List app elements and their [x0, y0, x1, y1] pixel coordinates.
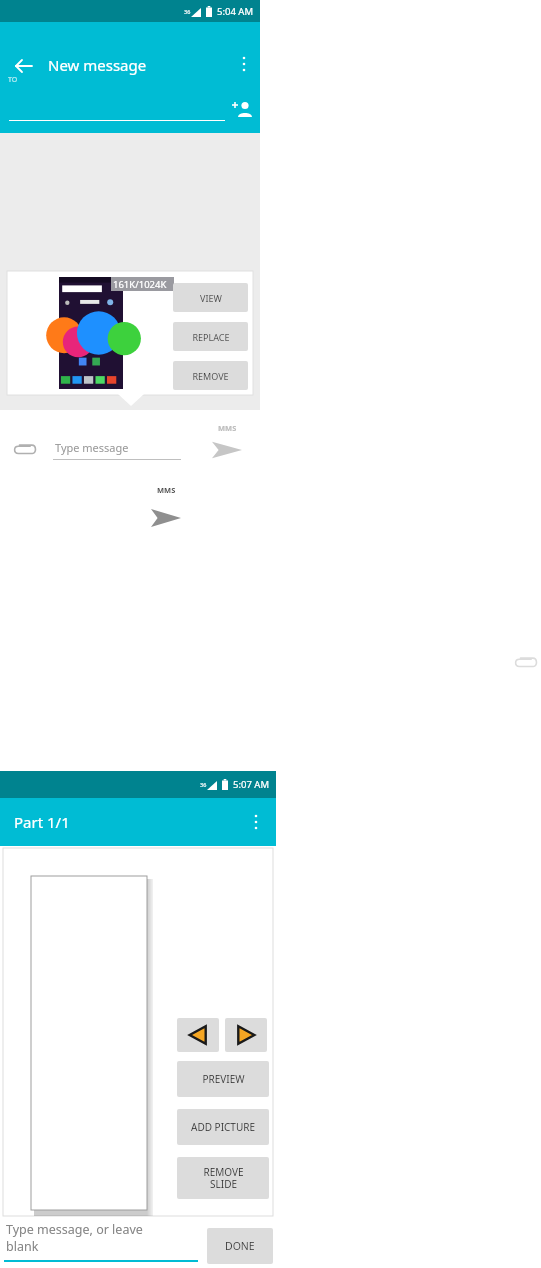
button[interactable]: REPLACE: [173, 322, 248, 351]
staticText: MMS: [218, 423, 237, 433]
staticText: Type message, or leave blank: [6, 1221, 143, 1255]
staticText: REMOVE SLIDE: [203, 1165, 244, 1191]
button[interactable]: Attach: [511, 648, 539, 676]
staticText: New message: [48, 55, 147, 75]
staticText: DONE: [225, 1239, 255, 1253]
staticText: 161K/1024K: [113, 278, 167, 291]
button[interactable]: Back: [10, 52, 38, 80]
staticText: ADD PICTURE: [191, 1120, 255, 1134]
staticText: PREVIEW: [202, 1072, 245, 1086]
button[interactable]: Add contact: [230, 98, 254, 122]
button[interactable]: DONE: [207, 1228, 273, 1264]
staticText: VIEW: [200, 292, 222, 304]
staticText: 5:07 AM: [233, 778, 270, 791]
button[interactable]: Send MMS: [145, 485, 187, 530]
button[interactable]: Previous slide: [177, 1018, 219, 1052]
staticText: Type message: [55, 440, 129, 455]
button[interactable]: ADD PICTURE: [177, 1109, 269, 1145]
button[interactable]: PREVIEW: [177, 1061, 269, 1097]
button[interactable]: REMOVE SLIDE: [177, 1157, 269, 1199]
staticText: REPLACE: [192, 331, 230, 343]
button[interactable]: Attach: [10, 435, 38, 463]
button[interactable]: Next slide: [225, 1018, 267, 1052]
button[interactable]: REMOVE: [173, 361, 248, 390]
button[interactable]: More options: [244, 810, 268, 834]
staticText: 36: [184, 8, 191, 15]
button[interactable]: Send MMS: [205, 421, 249, 466]
button[interactable]: VIEW: [173, 283, 248, 312]
staticText: 5:04 AM: [217, 5, 254, 18]
staticText: TO: [8, 75, 18, 85]
staticText: REMOVE: [192, 370, 229, 382]
button[interactable]: More options: [232, 52, 256, 76]
staticText: 36: [200, 781, 207, 788]
staticText: MMS: [157, 485, 176, 495]
staticText: Part 1/1: [14, 812, 70, 832]
